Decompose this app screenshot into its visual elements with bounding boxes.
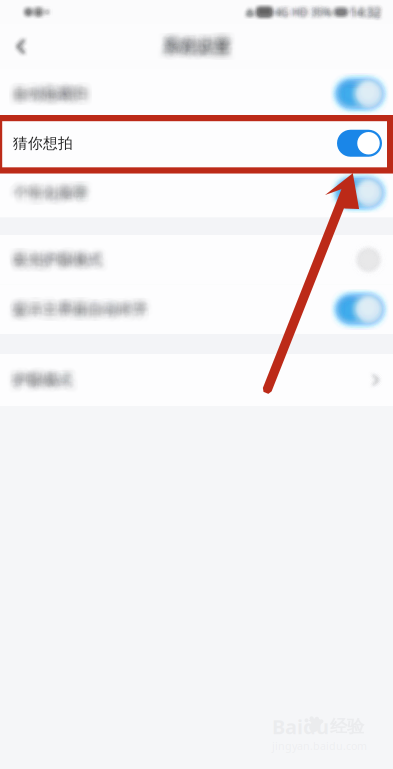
staticText: 4G	[272, 2, 286, 16]
button[interactable]: 护眼模式	[0, 354, 393, 406]
staticText: HD	[294, 5, 310, 19]
staticText: 自动隐藏扫	[13, 85, 88, 103]
staticText: 35%	[312, 8, 333, 22]
button[interactable]: 猜你想拍	[0, 118, 393, 168]
staticText: 自动隐藏扫	[13, 81, 88, 99]
staticText: 35%	[312, 3, 333, 17]
staticText: 系统设置	[160, 32, 228, 53]
staticText: 4G	[273, 1, 287, 15]
staticText: 系统设置	[157, 30, 225, 51]
staticText: 35%	[310, 5, 331, 20]
staticText: 系统设置	[167, 41, 235, 62]
staticText: 夜光护眼模式	[17, 251, 107, 269]
staticText: 14:32	[347, 7, 378, 23]
staticText: HD	[292, 4, 308, 18]
staticText: 夜光护眼模式	[14, 253, 104, 271]
staticText: 提示主界面自动对齐	[16, 294, 151, 312]
staticText: 提示主界面自动对齐	[9, 305, 144, 323]
staticText: 4G	[272, 2, 286, 16]
staticText: 护眼模式	[9, 367, 69, 385]
staticText: 自动隐藏扫	[18, 85, 93, 103]
staticText: 夜光护眼模式	[17, 250, 107, 268]
staticText: 35%	[313, 7, 334, 22]
staticText: 个性化推荐	[11, 181, 86, 199]
staticText: 自动隐藏扫	[13, 91, 88, 109]
staticText: 自动隐藏扫	[14, 83, 89, 101]
staticText: 系统设置	[167, 30, 235, 51]
staticText: 系统设置	[160, 42, 228, 63]
staticText: 系统设置	[163, 31, 231, 52]
button[interactable]: 提示主界面自动对齐	[0, 284, 393, 334]
staticText: 系统设置	[166, 41, 234, 62]
staticText: 35%	[307, 7, 328, 21]
staticText: 个性化推荐	[11, 189, 86, 207]
staticText: 提示主界面自动对齐	[14, 301, 149, 319]
staticText: 14:32	[351, 6, 382, 22]
staticText: 35%	[311, 8, 332, 22]
staticText: HD	[294, 2, 310, 17]
staticText: 4G	[276, 3, 290, 17]
staticText: 夜光护眼模式	[17, 249, 107, 267]
staticText: 个性化推荐	[18, 188, 93, 206]
staticText: 提示主界面自动对齐	[10, 299, 145, 317]
staticText: HD	[292, 7, 308, 22]
staticText: 护眼模式	[12, 377, 72, 395]
staticText: 自动隐藏扫	[10, 90, 85, 108]
staticText: 护眼模式	[13, 374, 73, 392]
staticText: HD	[289, 6, 305, 20]
staticText: 系统设置	[168, 41, 236, 62]
staticText: 个性化推荐	[14, 189, 89, 207]
staticText: 自动隐藏扫	[7, 79, 82, 97]
staticText: 夜光护眼模式	[12, 254, 102, 272]
staticText: 个性化推荐	[14, 190, 89, 208]
staticText: 14:32	[347, 4, 378, 20]
button[interactable]: 个性化推荐	[0, 168, 393, 217]
staticText: 4G	[272, 3, 286, 17]
staticText: 系统设置	[166, 38, 234, 59]
staticText: 夜光护眼模式	[19, 253, 109, 271]
staticText: 护眼模式	[11, 366, 71, 384]
staticText: 系统设置	[163, 42, 231, 63]
staticText: 夜光护眼模式	[14, 252, 104, 270]
staticText: 4G	[277, 2, 291, 17]
staticText: 护眼模式	[13, 368, 73, 386]
staticText: 4G	[277, 2, 291, 16]
staticText: HD	[291, 6, 307, 20]
staticText: 自动隐藏扫	[17, 87, 92, 105]
button[interactable]: 夜光护眼模式	[0, 235, 393, 284]
staticText: 35%	[310, 4, 331, 18]
staticText: 提示主界面自动对齐	[19, 300, 154, 318]
staticText: 系统设置	[159, 31, 227, 52]
staticText: 提示主界面自动对齐	[18, 296, 153, 314]
staticText: 夜光护眼模式	[16, 245, 106, 263]
staticText: 夜光护眼模式	[18, 246, 108, 264]
staticText: 护眼模式	[7, 374, 67, 392]
staticText: 14:32	[349, 5, 380, 21]
staticText: 系统设置	[167, 31, 235, 52]
staticText: 护眼模式	[14, 371, 74, 389]
staticText: 提示主界面自动对齐	[16, 305, 151, 323]
staticText: 护眼模式	[19, 372, 79, 390]
button[interactable]: 自动隐藏扫	[0, 69, 393, 118]
staticText: 提示主界面自动对齐	[8, 302, 143, 320]
staticText: 护眼模式	[16, 370, 76, 388]
staticText: 系统设置	[164, 40, 232, 61]
staticText: 提示主界面自动对齐	[12, 301, 147, 319]
staticText: 自动隐藏扫	[11, 88, 86, 106]
staticText: 个性化推荐	[18, 186, 93, 204]
staticText: 系统设置	[159, 41, 227, 62]
staticText: Baidu	[272, 713, 329, 740]
staticText: 夜光护眼模式	[13, 254, 103, 272]
staticText: 自动隐藏扫	[9, 87, 84, 105]
staticText: 35%	[307, 6, 328, 20]
staticText: 夜光护眼模式	[9, 251, 99, 269]
staticText: 夜光护眼模式	[9, 252, 99, 270]
button[interactable]: Back	[0, 24, 42, 69]
staticText: 个性化推荐	[10, 187, 85, 205]
staticText: HD	[296, 2, 312, 17]
staticText: 夜光护眼模式	[16, 254, 106, 272]
staticText: 个性化推荐	[11, 190, 86, 208]
staticText: 35%	[310, 8, 331, 22]
staticText: 14:32	[349, 6, 380, 22]
